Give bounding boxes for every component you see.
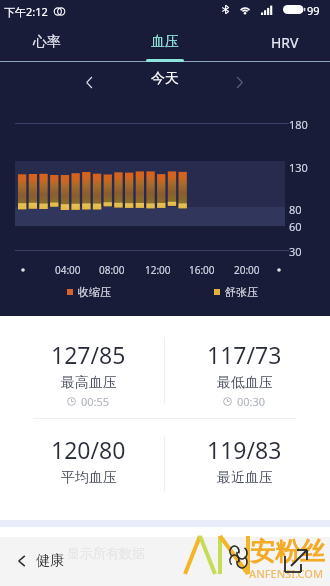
button[interactable]: 120/80 bbox=[6, 429, 171, 487]
staticText: 12:00 bbox=[145, 263, 171, 277]
staticText: 00:30 bbox=[237, 394, 266, 409]
button[interactable]: 健康 bbox=[12, 545, 68, 577]
button[interactable]: Previous day bbox=[78, 71, 100, 93]
staticText: 健康 bbox=[36, 552, 64, 570]
staticText: 舒张压 bbox=[225, 285, 258, 299]
staticText: 30 bbox=[289, 244, 302, 259]
staticText: ANFENSI.COM bbox=[249, 566, 324, 581]
staticText: 今天 bbox=[151, 70, 179, 88]
staticText: 16:00 bbox=[189, 263, 215, 277]
button[interactable]: 119/83 bbox=[162, 429, 327, 487]
staticText: 08:00 bbox=[99, 263, 125, 277]
button[interactable]: 收缩压 bbox=[67, 285, 111, 299]
staticText: 80 bbox=[289, 202, 302, 217]
staticText: 显示所有数据 bbox=[67, 545, 145, 561]
button[interactable]: HRV bbox=[230, 24, 330, 60]
staticText: 心率 bbox=[33, 33, 61, 51]
staticText: 130 bbox=[289, 160, 308, 175]
staticText: 20:00 bbox=[234, 263, 260, 277]
staticText: 最近血压 bbox=[217, 469, 273, 487]
staticText: 最低血压 bbox=[217, 374, 273, 392]
staticText: 最高血压 bbox=[61, 374, 117, 392]
staticText: 60 bbox=[289, 219, 302, 234]
staticText: HRV bbox=[271, 33, 299, 52]
staticText: 127/85 bbox=[51, 339, 126, 370]
staticText: 下午2:12 bbox=[4, 4, 48, 19]
staticText: 180 bbox=[289, 117, 308, 132]
staticText: 平均血压 bbox=[61, 469, 117, 487]
staticText: 99 bbox=[307, 3, 320, 18]
button[interactable]: 心率 bbox=[0, 24, 102, 60]
button[interactable]: Next day bbox=[228, 71, 250, 93]
staticText: 120/80 bbox=[51, 434, 126, 465]
staticText: 收缩压 bbox=[78, 285, 111, 299]
staticText: 00:55 bbox=[81, 394, 110, 409]
button[interactable]: 117/73 bbox=[162, 334, 327, 416]
staticText: 119/83 bbox=[207, 434, 282, 465]
button[interactable]: 127/85 bbox=[6, 334, 171, 416]
staticText: 安粉丝 bbox=[250, 536, 325, 567]
button[interactable]: 血压 bbox=[110, 24, 220, 60]
staticText: 04:00 bbox=[55, 263, 81, 277]
staticText: 血压 bbox=[151, 33, 179, 51]
button[interactable]: 舒张压 bbox=[214, 285, 258, 299]
staticText: 117/73 bbox=[207, 339, 282, 370]
